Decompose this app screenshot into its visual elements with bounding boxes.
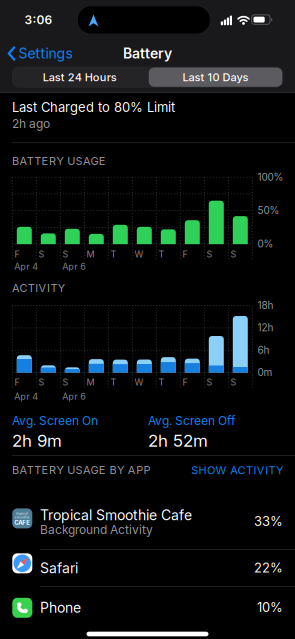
staticText: Apr 6 — [62, 261, 86, 272]
staticText: 3:06 — [25, 13, 53, 27]
staticText: T — [110, 249, 116, 259]
staticText: W — [134, 377, 143, 388]
staticText: Avg. Screen Off — [148, 413, 235, 428]
staticText: 50% — [257, 204, 279, 216]
staticText: S — [206, 249, 212, 259]
staticText: Settings — [18, 45, 72, 62]
staticText: W — [134, 249, 143, 259]
staticText: F — [182, 377, 187, 388]
staticText: SHOW ACTIVITY — [191, 464, 283, 477]
staticText: BATTERY USAGE — [12, 154, 106, 167]
staticText: BATTERY USAGE BY APP — [12, 463, 151, 476]
staticText: Background Activity — [40, 522, 153, 537]
staticText: S — [62, 377, 68, 388]
staticText: S — [230, 249, 236, 259]
staticText: Safari — [40, 560, 78, 576]
button[interactable]: Last 10 Days — [149, 66, 282, 88]
staticText: Phone — [40, 599, 81, 616]
staticText: Last Charged to 80% Limit — [12, 99, 175, 115]
staticText: 22% — [254, 560, 283, 575]
staticText: S — [38, 377, 44, 388]
button[interactable]: Phone — [0, 586, 295, 632]
staticText: Avg. Screen On — [12, 413, 98, 428]
staticText: Last 24 Hours — [43, 71, 117, 84]
staticText: 2h 9m — [12, 430, 62, 451]
staticText: S — [206, 377, 212, 388]
staticText: tropical — [16, 512, 28, 515]
staticText: Tropical Smoothie Cafe — [40, 507, 192, 523]
staticText: S — [38, 249, 44, 259]
staticText: M — [86, 249, 94, 259]
staticText: Last 10 Days — [182, 71, 248, 84]
staticText: 100% — [257, 171, 283, 183]
staticText: M — [86, 377, 94, 388]
staticText: F — [14, 377, 19, 388]
staticText: 18h — [257, 299, 273, 311]
staticText: 2h 52m — [148, 430, 208, 451]
staticText: CAFE — [14, 519, 30, 526]
button[interactable]: SHOW ACTIVITY — [171, 463, 283, 478]
staticText: ACTIVITY — [12, 281, 65, 294]
button[interactable]: Safari — [0, 549, 295, 586]
staticText: Apr 4 — [14, 261, 38, 272]
staticText: 12h — [257, 322, 273, 334]
staticText: 10% — [257, 599, 283, 615]
staticText: T — [158, 377, 164, 388]
button[interactable]: Back to Settings — [4, 42, 80, 65]
staticText: 2h ago — [12, 116, 50, 131]
staticText: Apr 6 — [62, 391, 86, 402]
staticText: 0m — [257, 366, 272, 378]
button[interactable]: Last 24 Hours — [12, 66, 148, 88]
staticText: S — [230, 377, 236, 388]
button[interactable]: tropical — [0, 494, 295, 549]
staticText: F — [14, 249, 19, 259]
staticText: Battery — [123, 45, 172, 62]
staticText: T — [110, 377, 116, 388]
staticText: F — [182, 249, 187, 259]
staticText: T — [158, 249, 164, 259]
staticText: 0% — [257, 238, 273, 250]
staticText: smoothie — [15, 516, 30, 519]
staticText: S — [62, 249, 68, 259]
staticText: 6h — [257, 344, 269, 356]
staticText: Apr 4 — [14, 391, 38, 402]
staticText: 33% — [254, 513, 283, 529]
